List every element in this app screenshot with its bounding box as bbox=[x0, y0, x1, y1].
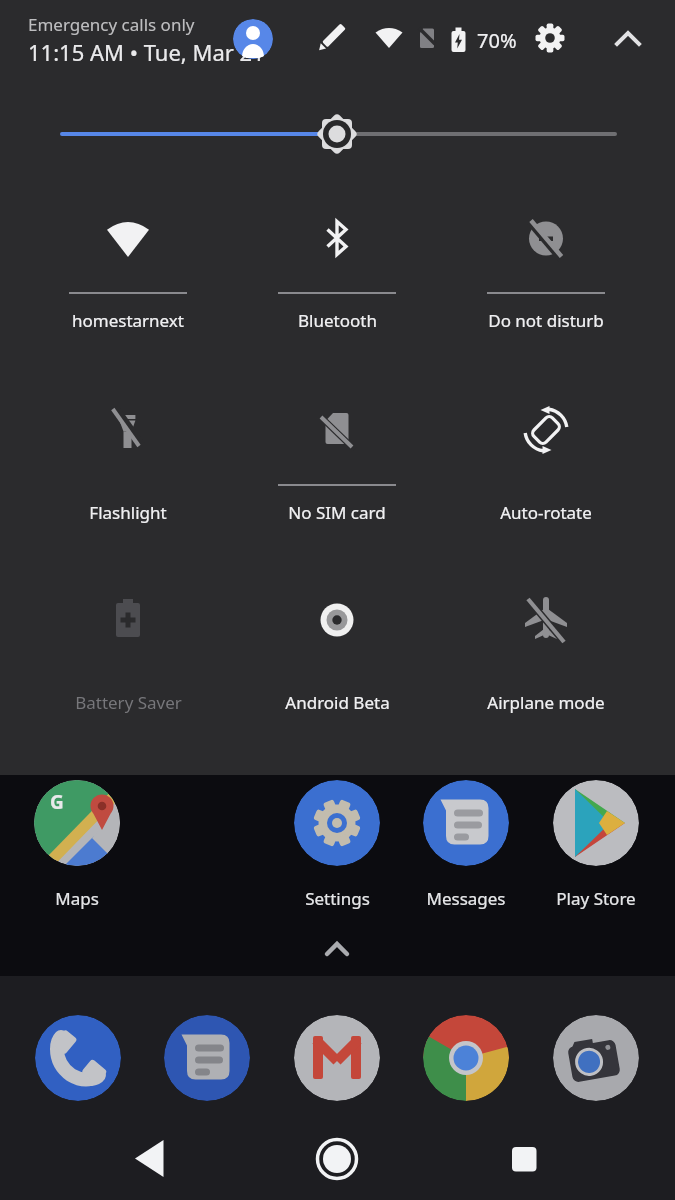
button[interactable]: Flashlight bbox=[24, 382, 232, 526]
button[interactable]: Android Beta bbox=[233, 572, 441, 716]
button[interactable] bbox=[294, 780, 380, 866]
staticText: Emergency calls only bbox=[28, 13, 195, 36]
button[interactable] bbox=[317, 933, 357, 965]
staticText: Android Beta bbox=[285, 691, 390, 714]
button[interactable] bbox=[294, 1015, 380, 1101]
staticText: 11:15 AM • Tue, Mar 21 bbox=[28, 37, 265, 67]
staticText: Auto-rotate bbox=[500, 501, 592, 524]
button[interactable] bbox=[117, 1127, 181, 1191]
button[interactable] bbox=[164, 1015, 250, 1101]
staticText: Messages bbox=[426, 887, 506, 910]
button[interactable] bbox=[526, 14, 574, 62]
staticText: Bluetooth bbox=[298, 309, 377, 332]
staticText: 70% bbox=[477, 27, 517, 54]
button[interactable] bbox=[423, 780, 509, 866]
button[interactable]: homestarnext bbox=[24, 190, 232, 334]
staticText: Battery Saver bbox=[75, 691, 182, 714]
staticText: No SIM card bbox=[288, 501, 386, 524]
staticText: homestarnext bbox=[72, 309, 184, 332]
button[interactable]: Auto-rotate bbox=[442, 382, 650, 526]
button[interactable] bbox=[553, 1015, 639, 1101]
button[interactable] bbox=[423, 1015, 509, 1101]
button[interactable]: Do not disturb bbox=[442, 190, 650, 334]
button[interactable]: Bluetooth bbox=[233, 190, 441, 334]
staticText: Do not disturb bbox=[488, 309, 604, 332]
button[interactable] bbox=[35, 1015, 121, 1101]
button[interactable] bbox=[553, 780, 639, 866]
button[interactable] bbox=[604, 16, 652, 64]
button[interactable] bbox=[233, 19, 273, 59]
staticText: Maps bbox=[55, 887, 99, 910]
button[interactable] bbox=[492, 1127, 556, 1191]
staticText: Flashlight bbox=[89, 501, 167, 524]
button[interactable]: Battery Saver bbox=[24, 572, 232, 716]
staticText: G bbox=[50, 789, 64, 815]
button[interactable]: No SIM card bbox=[233, 382, 441, 526]
staticText: Play Store bbox=[556, 887, 636, 910]
button[interactable] bbox=[307, 14, 355, 62]
button[interactable] bbox=[34, 780, 120, 866]
button[interactable] bbox=[40, 108, 635, 160]
button[interactable]: Airplane mode bbox=[442, 572, 650, 716]
staticText: Airplane mode bbox=[487, 691, 605, 714]
button[interactable] bbox=[305, 1127, 369, 1191]
staticText: Settings bbox=[305, 887, 370, 910]
